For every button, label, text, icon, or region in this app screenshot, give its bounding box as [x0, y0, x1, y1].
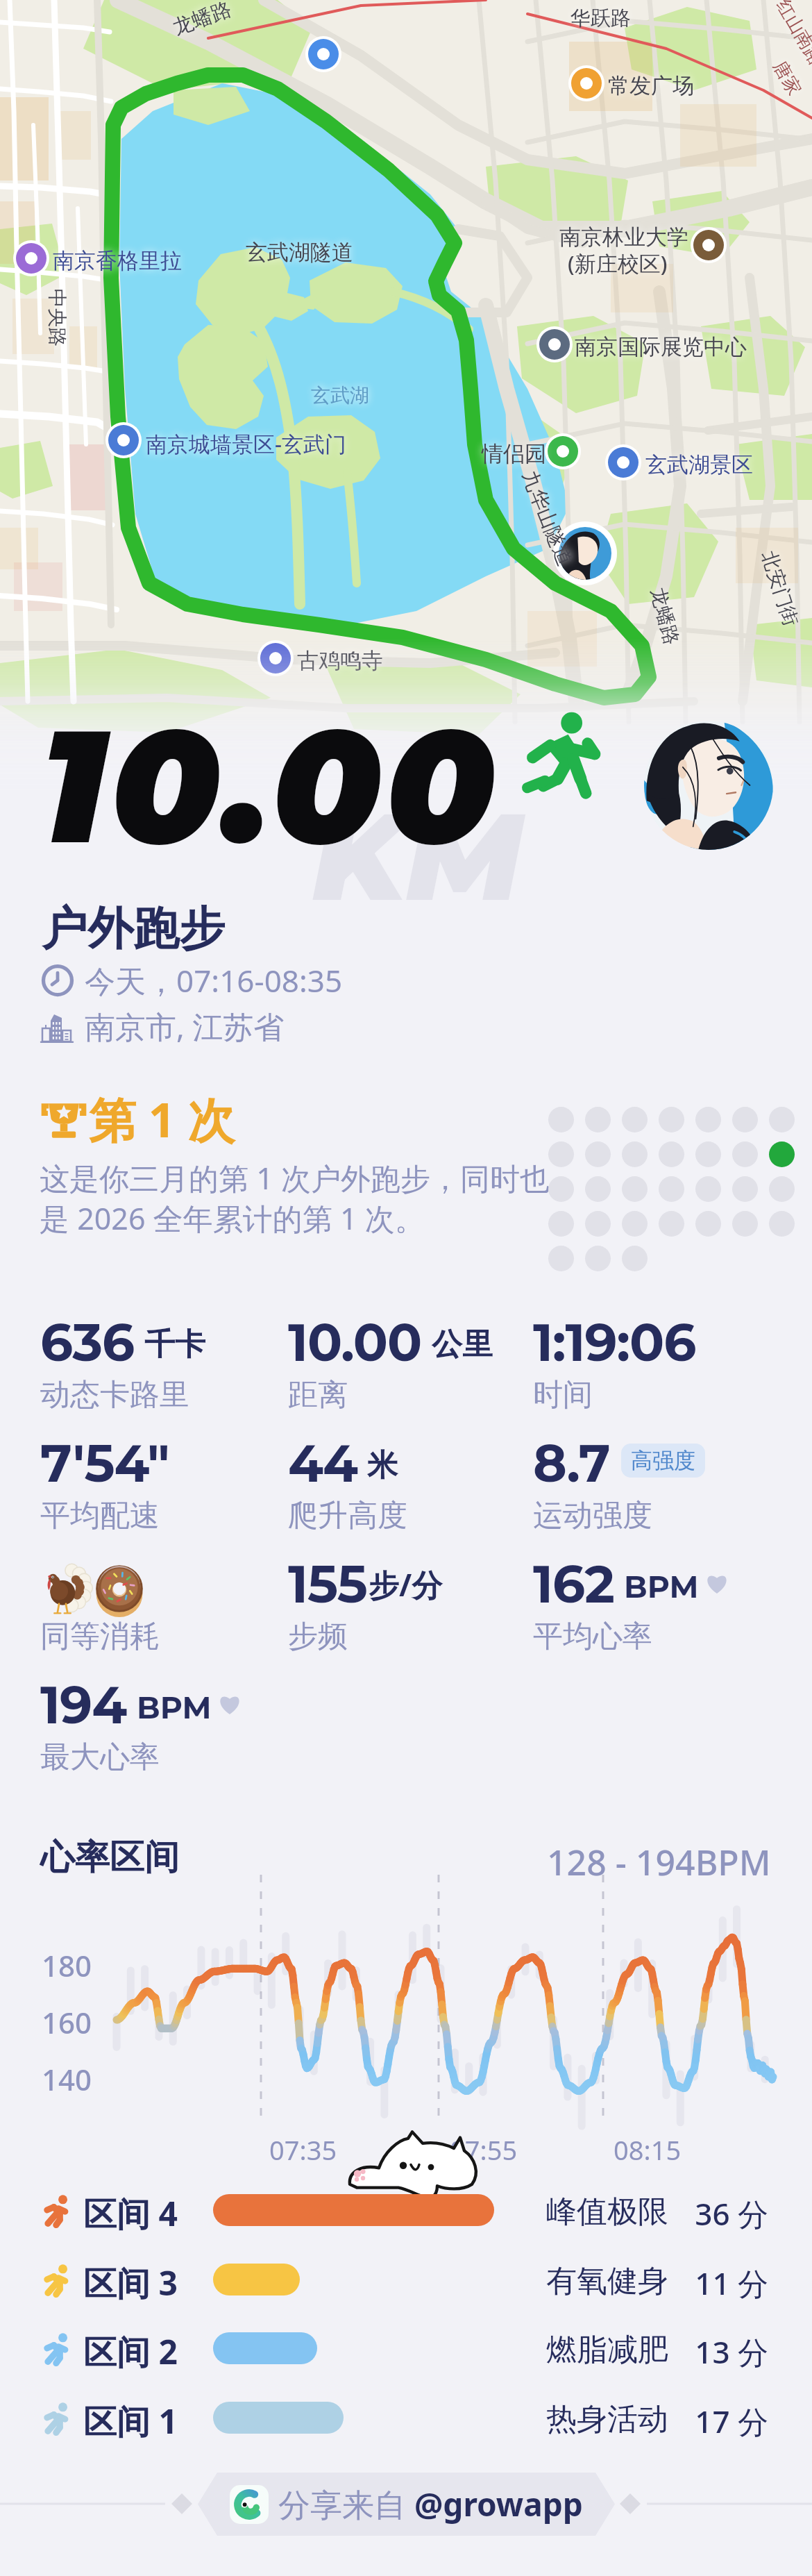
- button[interactable]: 44: [288, 1443, 517, 1547]
- staticText: 今天，07:16-08:35: [85, 960, 343, 1001]
- staticText: 1:19:06: [533, 1311, 696, 1373]
- button[interactable]: 1:19:06: [533, 1322, 762, 1426]
- staticText: BPM: [624, 1568, 699, 1605]
- staticText: 636: [40, 1311, 135, 1373]
- staticText: 10.00: [288, 1311, 422, 1373]
- button[interactable]: 636: [40, 1322, 269, 1426]
- button[interactable]: Profile avatar: [644, 721, 773, 850]
- staticText: 古鸡鸣寺: [297, 647, 383, 674]
- staticText: 户外跑步: [42, 900, 225, 957]
- staticText: 心率区间: [40, 1836, 179, 1880]
- staticText: 同等消耗: [40, 1618, 160, 1655]
- staticText: 162: [533, 1553, 614, 1615]
- staticText: 九华山隧道: [516, 467, 578, 570]
- staticText: 步频: [288, 1618, 348, 1655]
- staticText: BPM: [137, 1689, 212, 1726]
- staticText: 是 2026 全年累计的第 1 次。: [40, 1198, 425, 1239]
- button[interactable]: 155: [288, 1564, 517, 1668]
- staticText: 8.7: [533, 1432, 610, 1494]
- staticText: 10.00: [40, 689, 500, 882]
- staticText: 步/分: [369, 1564, 443, 1605]
- staticText: 区间 2: [83, 2329, 178, 2375]
- staticText: 南京香格里拉: [53, 247, 182, 274]
- staticText: 180: [42, 1946, 92, 1985]
- staticText: KM: [312, 782, 523, 931]
- staticText: 7'54": [40, 1432, 169, 1494]
- button[interactable]: 10.00: [288, 1322, 517, 1426]
- staticText: 米: [367, 1446, 398, 1484]
- staticText: 平均心率: [533, 1618, 652, 1655]
- staticText: 玄武湖隧道: [246, 239, 353, 266]
- staticText: 有氧健身: [546, 2262, 668, 2300]
- button[interactable]: 区间 2: [0, 2314, 812, 2383]
- staticText: 高强度: [631, 1447, 695, 1474]
- staticText: 燃脂减肥: [546, 2331, 668, 2369]
- staticText: 峰值极限: [546, 2193, 668, 2231]
- staticText: 这是你三月的第 1 次户外跑步，同时也: [40, 1157, 550, 1198]
- button[interactable]: 区间 1: [0, 2383, 812, 2452]
- button[interactable]: 分享来自: [230, 2482, 583, 2526]
- button[interactable]: Route map: [0, 0, 812, 798]
- staticText: 唐家: [768, 57, 806, 99]
- staticText: 千卡: [144, 1325, 205, 1364]
- staticText: 08:15: [614, 2132, 682, 2168]
- staticText: 南京市, 江苏省: [85, 1005, 285, 1047]
- staticText: 07:35: [269, 2132, 337, 2168]
- staticText: 155: [288, 1553, 367, 1615]
- staticText: (新庄校区): [568, 249, 668, 278]
- button[interactable]: 同等消耗: [40, 1564, 269, 1668]
- staticText: @growapp: [414, 2482, 583, 2526]
- staticText: 第 1 次: [89, 1087, 235, 1151]
- staticText: 194: [40, 1673, 127, 1736]
- staticText: 南京城墙景区-玄武门: [146, 429, 346, 458]
- staticText: 中央路: [45, 288, 69, 347]
- staticText: 红山南路: [772, 0, 812, 69]
- button[interactable]: [32, 1083, 539, 1243]
- staticText: 热身活动: [546, 2400, 668, 2439]
- button[interactable]: [32, 889, 462, 1042]
- staticText: 公里: [432, 1325, 493, 1364]
- staticText: 区间 3: [83, 2260, 178, 2306]
- staticText: 11 分: [685, 2262, 768, 2304]
- staticText: 区间 1: [83, 2398, 178, 2444]
- staticText: 160: [42, 2002, 92, 2042]
- button[interactable]: 区间 4: [0, 2175, 812, 2245]
- staticText: 17 分: [685, 2400, 768, 2442]
- button[interactable]: 8.7: [533, 1443, 762, 1547]
- staticText: 爬升高度: [288, 1497, 407, 1534]
- staticText: 距离: [288, 1376, 348, 1414]
- staticText: 36 分: [685, 2193, 768, 2234]
- staticText: 龙蟠路: [170, 0, 235, 41]
- staticText: 华跃路: [570, 6, 631, 31]
- staticText: 分享来自: [278, 2482, 414, 2526]
- staticText: 最大心率: [40, 1739, 160, 1776]
- staticText: 128 - 194BPM: [547, 1839, 771, 1886]
- staticText: 区间 4: [83, 2191, 178, 2236]
- staticText: 北安门街: [757, 548, 804, 629]
- staticText: 南京林业大学: [559, 224, 688, 251]
- staticText: 南京国际展览中心: [575, 333, 747, 360]
- staticText: 玄武湖景区: [645, 451, 753, 478]
- button[interactable]: Running activity: [522, 710, 611, 798]
- staticText: 平均配速: [40, 1497, 160, 1534]
- staticText: 情侣园: [482, 440, 546, 467]
- staticText: 07:55: [450, 2132, 518, 2168]
- staticText: 常发广场: [608, 72, 694, 99]
- staticText: 玄武湖: [311, 383, 369, 408]
- staticText: 140: [42, 2059, 92, 2099]
- staticText: 时间: [533, 1376, 593, 1414]
- staticText: 13 分: [685, 2331, 768, 2373]
- staticText: 运动强度: [533, 1497, 652, 1534]
- button[interactable]: 194: [40, 1684, 269, 1789]
- button[interactable]: 区间 3: [0, 2245, 812, 2314]
- button[interactable]: 7'54": [40, 1443, 269, 1547]
- staticText: 44: [288, 1432, 357, 1494]
- button[interactable]: 162: [533, 1564, 762, 1668]
- staticText: 动态卡路里: [40, 1376, 189, 1414]
- staticText: 龙蟠路: [646, 585, 684, 648]
